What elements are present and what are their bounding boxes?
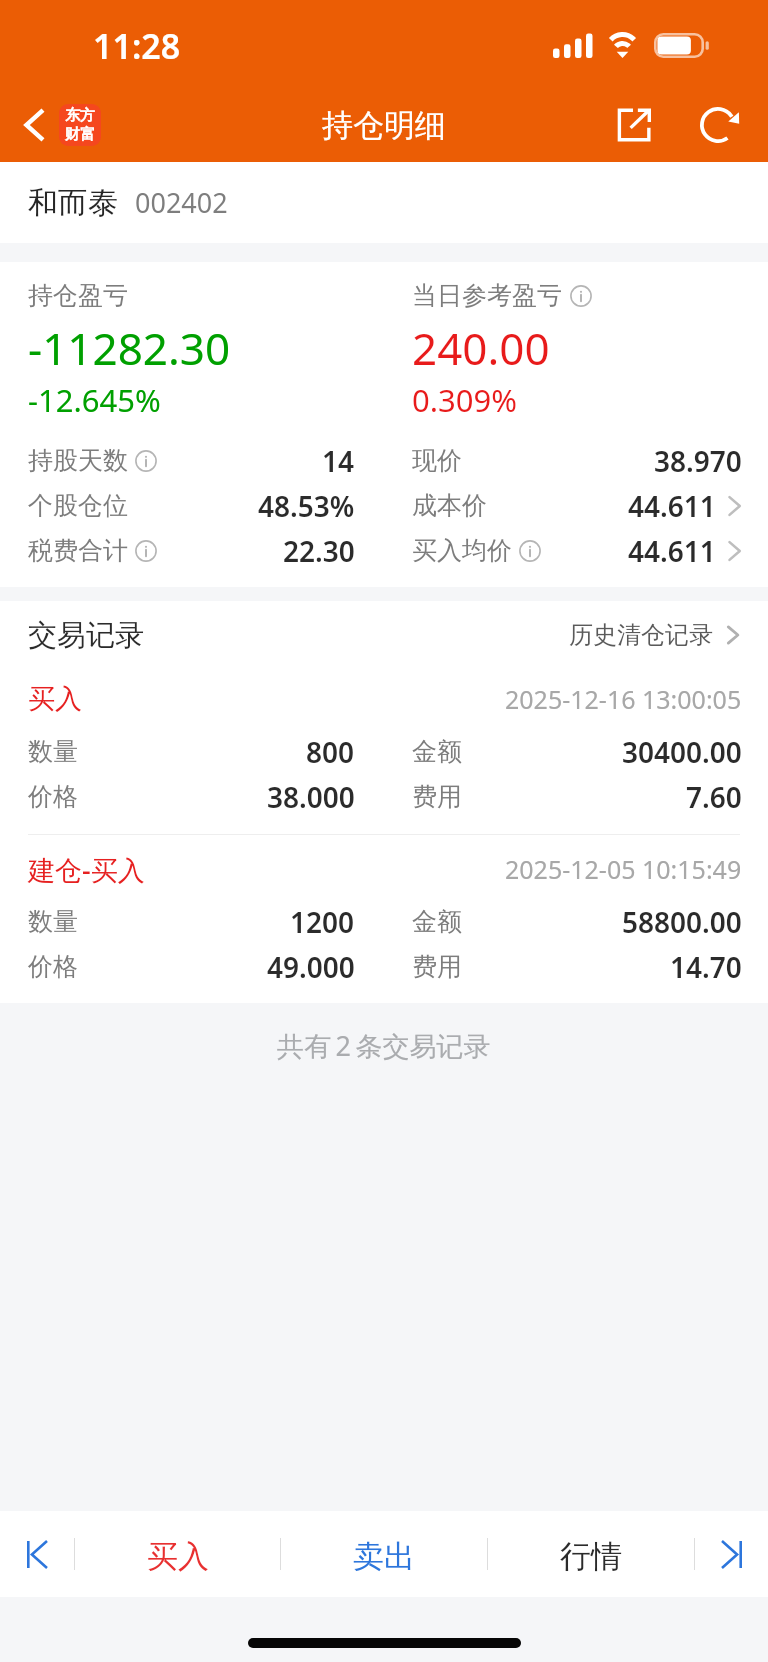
staticText: 800	[306, 733, 355, 771]
button[interactable]: Next	[695, 1511, 768, 1597]
button[interactable]: Share	[606, 96, 664, 154]
staticText: 历史清仓记录	[569, 620, 713, 650]
staticText: 22.30	[283, 532, 355, 570]
staticText: 0.309%	[412, 379, 517, 421]
staticText: 1200	[290, 903, 355, 941]
staticText: 持仓盈亏	[28, 280, 128, 311]
staticText: 和而泰	[28, 184, 118, 222]
staticText: 税费合计	[28, 535, 128, 566]
staticText: 交易记录	[28, 617, 144, 654]
button[interactable]: 买入	[75, 1511, 280, 1597]
staticText: 当日参考盈亏	[412, 280, 562, 311]
staticText: 48.53%	[258, 487, 355, 525]
staticText: 持股天数	[28, 445, 128, 476]
staticText: 金额	[412, 906, 462, 937]
staticText: 行情	[560, 1537, 622, 1576]
staticText: 2025-12-05 10:15:49	[505, 852, 742, 886]
staticText: 金额	[412, 736, 462, 767]
staticText: 44.611	[628, 532, 716, 570]
staticText: 共有 2 条交易记录	[277, 1027, 491, 1064]
staticText: 价格	[28, 781, 78, 812]
button[interactable]: Refresh	[689, 96, 747, 154]
staticText: 7.60	[686, 778, 742, 816]
staticText: 现价	[412, 445, 462, 476]
button[interactable]: 行情	[488, 1511, 694, 1597]
staticText: 数量	[28, 906, 78, 937]
staticText: 49.000	[267, 948, 355, 986]
staticText: 30400.00	[622, 733, 742, 771]
staticText: 2025-12-16 13:00:05	[505, 682, 742, 716]
staticText: 财富	[65, 125, 95, 144]
staticText: 价格	[28, 951, 78, 982]
button[interactable]: 卖出	[281, 1511, 487, 1597]
staticText: 卖出	[353, 1537, 415, 1576]
staticText: 14.70	[670, 948, 742, 986]
staticText: 44.611	[628, 487, 716, 525]
staticText: 240.00	[412, 318, 550, 378]
staticText: 38.000	[267, 778, 355, 816]
staticText: 数量	[28, 736, 78, 767]
staticText: 建仓-买入	[28, 851, 145, 888]
staticText: 东方	[65, 106, 95, 125]
staticText: 002402	[135, 184, 228, 221]
staticText: 11:28	[93, 23, 181, 69]
staticText: 买入	[28, 682, 82, 716]
staticText: 费用	[412, 781, 462, 812]
button[interactable]: Back	[24, 104, 109, 146]
staticText: 买入	[147, 1537, 209, 1576]
staticText: 买入均价	[412, 535, 512, 566]
staticText: 14	[322, 442, 355, 480]
staticText: 个股仓位	[28, 490, 128, 521]
other: Back	[24, 108, 44, 142]
staticText: 持仓明细	[322, 106, 446, 145]
staticText: -12.645%	[28, 379, 161, 421]
staticText: 成本价	[412, 490, 487, 521]
staticText: 58800.00	[622, 903, 742, 941]
staticText: 38.970	[654, 442, 742, 480]
button[interactable]: 历史清仓记录	[569, 614, 740, 656]
staticText: 费用	[412, 951, 462, 982]
staticText: -11282.30	[28, 318, 231, 378]
button[interactable]: Previous	[0, 1511, 74, 1597]
